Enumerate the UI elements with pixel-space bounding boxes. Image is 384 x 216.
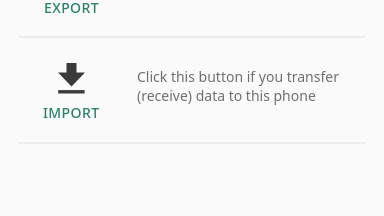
staticText: EXPORT	[44, 0, 99, 17]
button[interactable]: Export	[27, 0, 115, 17]
staticText: IMPORT	[43, 103, 100, 122]
button[interactable]: Import	[27, 63, 115, 122]
other: Import	[58, 63, 85, 94]
staticText: Click this button if you transfer (recei…	[137, 67, 349, 105]
